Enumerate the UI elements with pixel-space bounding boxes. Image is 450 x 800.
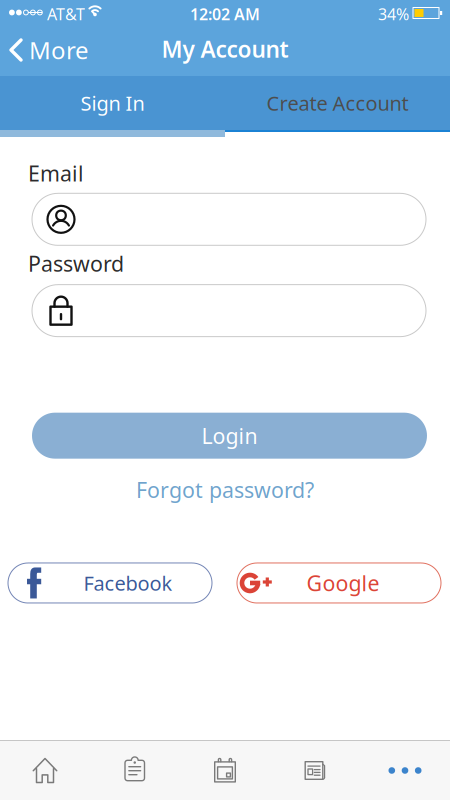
button[interactable]: Forms [90,741,180,800]
staticText: Sign In [80,90,144,116]
button[interactable]: Forgot password? [136,476,314,504]
button[interactable]: News [270,741,360,800]
staticText: Facebook [83,570,172,596]
staticText: Password [28,249,124,278]
button[interactable]: Login [32,413,427,459]
staticText: Create Account [266,90,408,116]
button[interactable]: More [360,741,450,800]
staticText: Google [306,569,379,597]
staticText: 12:02 AM [190,3,260,25]
button[interactable]: Google [237,563,441,603]
button[interactable]: Create Account [225,76,450,130]
button[interactable]: Facebook [8,563,212,603]
button[interactable]: Sign In [0,76,225,130]
button[interactable]: Calendar [180,741,270,800]
button[interactable]: Password [32,285,426,337]
button[interactable]: Back to More [0,30,89,74]
staticText: More [29,34,89,66]
button[interactable]: Home [0,741,90,800]
staticText: Email [28,159,84,187]
staticText: AT&T [47,3,85,25]
staticText: 34% [378,3,409,25]
button[interactable]: Email [32,193,426,245]
staticText: My Account [161,34,288,64]
staticText: Login [201,421,257,450]
staticText: Forgot password? [136,476,314,504]
